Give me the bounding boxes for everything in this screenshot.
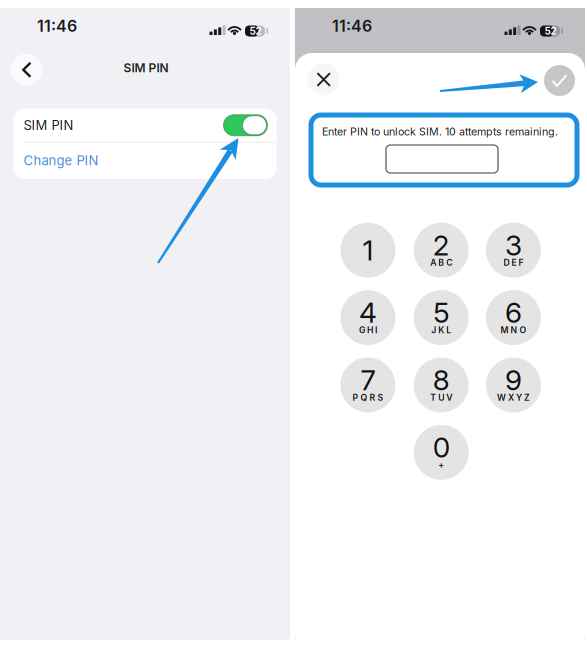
staticText: 6 — [505, 296, 522, 330]
staticText: 52 — [544, 25, 556, 37]
button[interactable]: 2 — [414, 223, 469, 278]
staticText: 4 — [359, 296, 377, 330]
button[interactable]: 9 — [486, 357, 541, 412]
staticText: Change PIN — [23, 153, 98, 168]
button[interactable]: Confirm PIN — [544, 65, 575, 96]
staticText: P Q R S — [352, 392, 383, 403]
staticText: + — [438, 460, 444, 470]
staticText: 8 — [433, 363, 450, 397]
staticText: Enter PIN to unlock SIM. 10 attempts rem… — [322, 125, 558, 138]
staticText: 52 — [249, 25, 261, 37]
button[interactable]: Back — [11, 54, 42, 85]
button[interactable]: Close — [308, 63, 340, 95]
button[interactable]: 5 — [414, 290, 469, 345]
button[interactable]: 4 — [340, 290, 395, 345]
staticText: 2 — [433, 228, 450, 262]
staticText: G H I — [359, 325, 377, 335]
staticText: 0 — [433, 430, 450, 464]
staticText: A B C — [430, 257, 452, 268]
staticText: 9 — [505, 363, 522, 397]
staticText: 11:46 — [332, 16, 372, 36]
staticText: SIM PIN — [23, 117, 73, 133]
button[interactable]: 7 — [340, 357, 395, 412]
staticText: 1 — [362, 233, 373, 267]
staticText: M N O — [500, 325, 526, 335]
button[interactable]: 0 — [414, 425, 469, 480]
button[interactable]: 8 — [414, 357, 469, 412]
button[interactable]: Change PIN — [13, 142, 276, 179]
staticText: W X Y Z — [497, 392, 530, 403]
button[interactable]: 1 — [340, 223, 395, 278]
staticText: 7 — [360, 363, 375, 397]
staticText: J K L — [431, 325, 451, 335]
staticText: SIM PIN — [123, 61, 168, 75]
staticText: D E F — [503, 257, 523, 268]
staticText: T U V — [430, 392, 452, 403]
staticText: 11:46 — [37, 16, 77, 36]
staticText: 3 — [505, 228, 522, 262]
button[interactable]: 3 — [486, 223, 541, 278]
button[interactable]: 6 — [486, 290, 541, 345]
staticText: 5 — [433, 296, 449, 330]
button[interactable]: SIM PIN — [13, 108, 276, 142]
